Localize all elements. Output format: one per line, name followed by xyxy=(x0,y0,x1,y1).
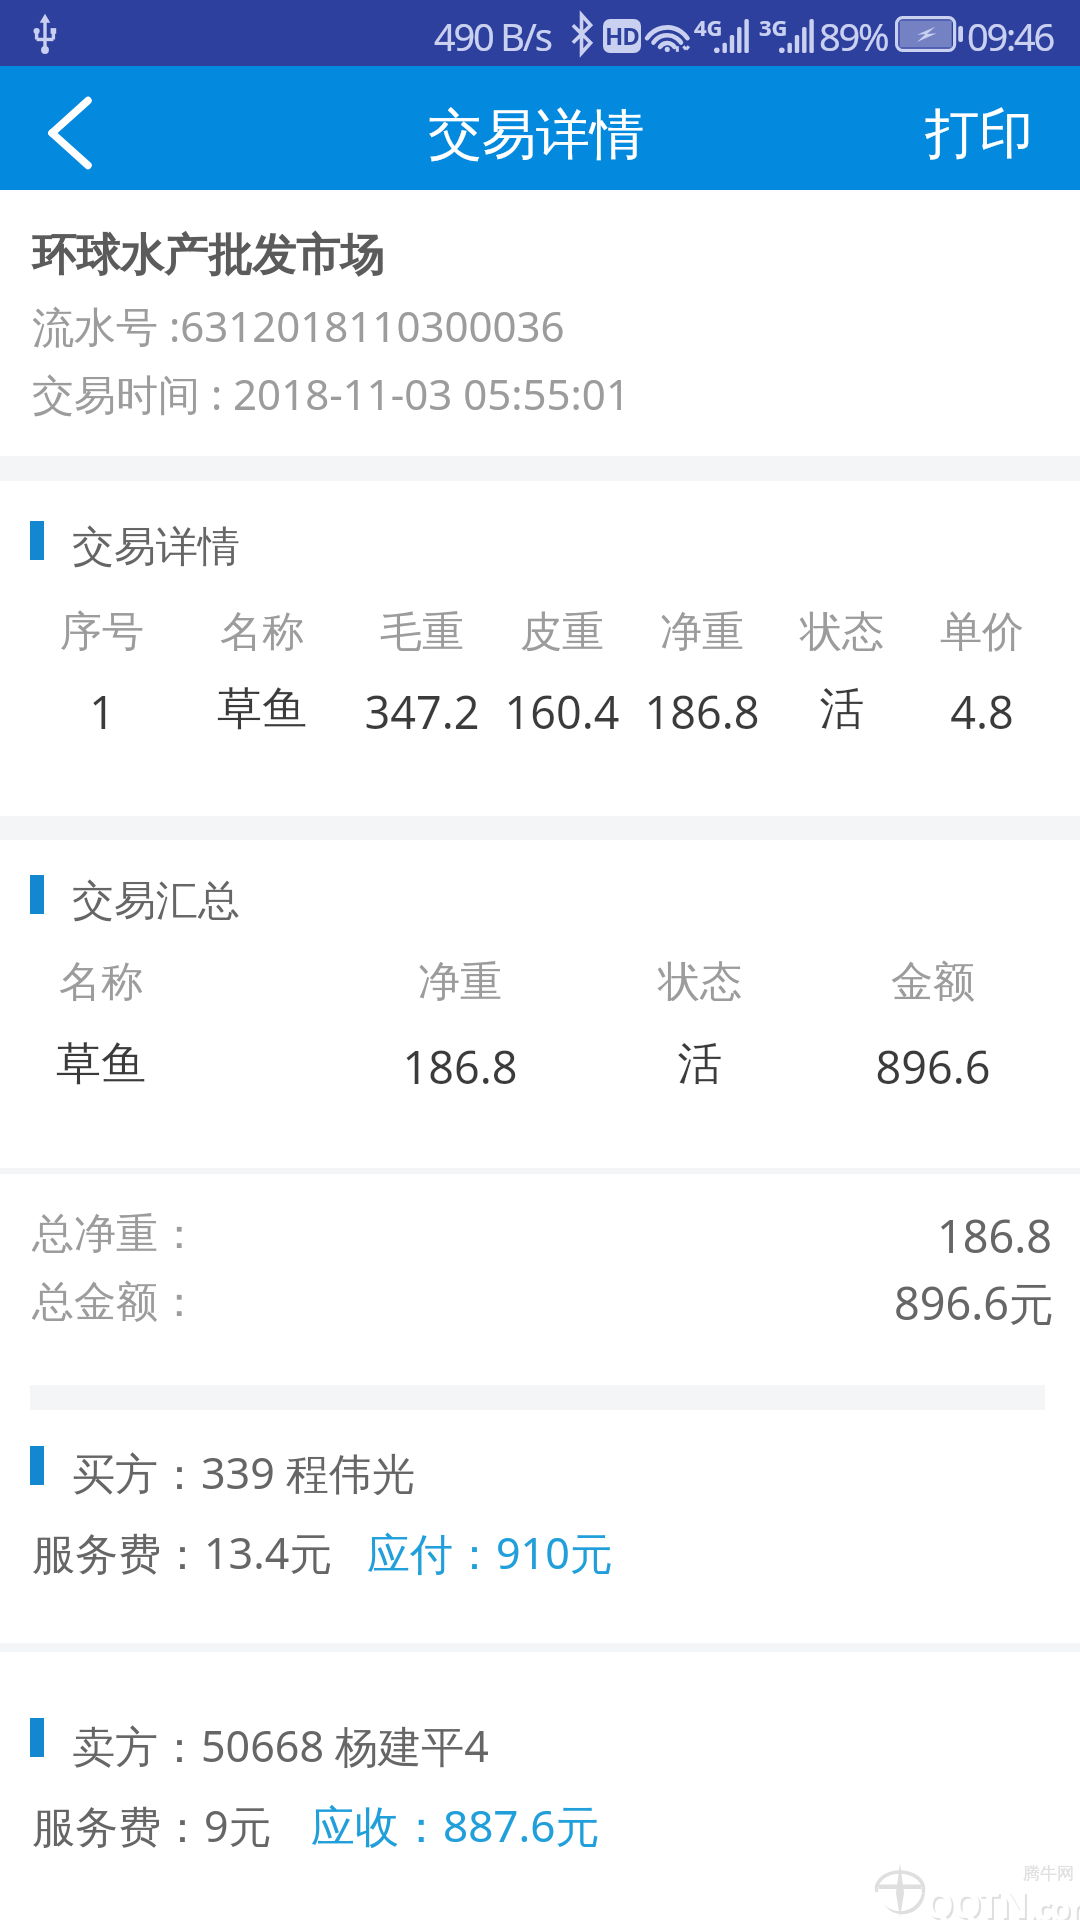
staticText: 活 xyxy=(752,681,932,738)
staticText: 草鱼 xyxy=(172,681,352,738)
staticText: 状态 xyxy=(610,956,790,1009)
button[interactable]: Back xyxy=(0,66,140,190)
staticText: 交易汇总 xyxy=(72,875,240,928)
staticText: 买方：339 程伟光 xyxy=(72,1443,415,1502)
staticText: 环球水产批发市场 xyxy=(32,228,384,283)
staticText: 服务费：13.4元 xyxy=(32,1523,333,1582)
staticText: 打印 xyxy=(925,100,1033,168)
staticText: 净重 xyxy=(612,606,792,659)
staticText: 4G xyxy=(694,12,723,42)
staticText: 490 B/s xyxy=(434,10,551,62)
staticText: HD xyxy=(605,19,639,52)
staticText: 状态 xyxy=(752,606,932,659)
button[interactable]: 买方：339 程伟光 xyxy=(0,1410,1080,1643)
staticText: 186.8 xyxy=(370,1036,550,1097)
staticText: 896.6 xyxy=(843,1036,1023,1097)
staticText: 3G xyxy=(759,12,788,42)
staticText: 160.4 xyxy=(472,681,652,742)
staticText: 草鱼 xyxy=(11,1036,191,1093)
button[interactable]: 交易汇总 xyxy=(0,840,1080,1168)
button[interactable]: 总净重： xyxy=(0,1174,1080,1385)
staticText: 腾牛网 xyxy=(1023,1863,1074,1884)
staticText: 活 xyxy=(610,1036,790,1093)
staticText: 总金额： xyxy=(32,1276,200,1329)
staticText: 896.6元 xyxy=(0,1272,1054,1333)
staticText: 净重 xyxy=(370,956,550,1009)
staticText: QQTN xyxy=(925,1880,1027,1920)
staticText: 名称 xyxy=(172,606,352,659)
staticText: 流水号 :6312018110300036 xyxy=(32,297,565,354)
staticText: 1 xyxy=(12,681,192,742)
button[interactable]: 交易详情 xyxy=(0,481,1080,816)
staticText: QQTN xyxy=(927,1882,1029,1920)
staticText: 交易详情 xyxy=(72,521,240,574)
staticText: 皮重 xyxy=(472,606,652,659)
staticText: 186.8 xyxy=(612,681,792,742)
staticText: 服务费：9元 xyxy=(32,1796,272,1855)
button[interactable]: 卖方：50668 杨建平4 xyxy=(0,1652,1080,1920)
staticText: 总净重： xyxy=(32,1208,200,1261)
staticText: 186.8 xyxy=(0,1205,1052,1266)
staticText: 名称 xyxy=(11,956,191,1009)
staticText: .com xyxy=(1027,1886,1080,1920)
staticText: 毛重 xyxy=(332,606,512,659)
staticText: 交易时间 : 2018-11-03 05:55:01 xyxy=(32,365,630,422)
button[interactable]: 打印 xyxy=(925,66,1033,190)
staticText: 89% xyxy=(819,10,888,62)
staticText: 应付：910元 xyxy=(367,1523,613,1582)
staticText: 交易详情 xyxy=(0,101,1076,169)
staticText: 序号 xyxy=(12,606,192,659)
staticText: 09:46 xyxy=(967,10,1054,62)
staticText: 347.2 xyxy=(332,681,512,742)
staticText: 金额 xyxy=(843,956,1023,1009)
staticText: 应收：887.6元 xyxy=(311,1795,600,1855)
staticText: .com xyxy=(1029,1888,1080,1920)
staticText: 4.8 xyxy=(892,681,1072,742)
staticText: 卖方：50668 杨建平4 xyxy=(72,1716,489,1775)
staticText: 单价 xyxy=(892,606,1072,659)
